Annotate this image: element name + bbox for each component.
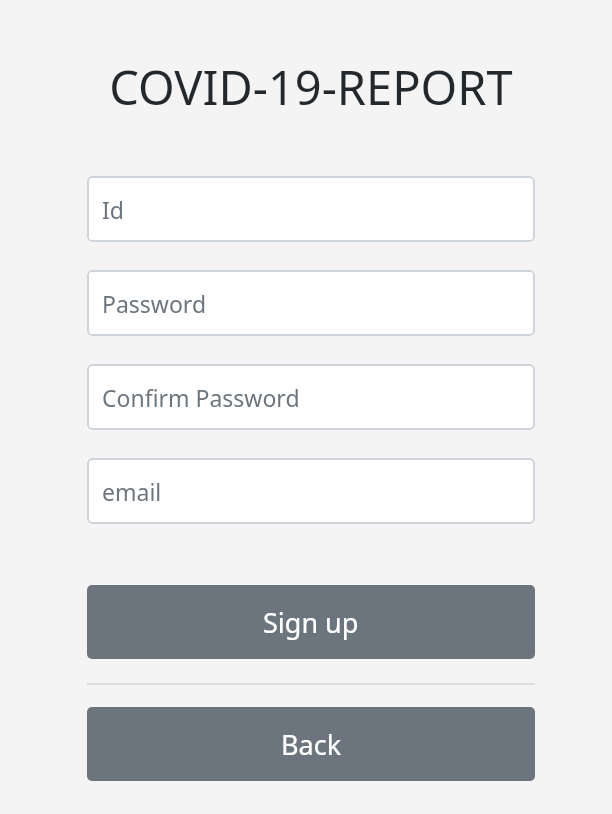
staticText: Id xyxy=(102,194,124,225)
button[interactable]: Password xyxy=(87,270,535,336)
staticText: Back xyxy=(281,726,342,763)
button[interactable]: email xyxy=(87,458,535,524)
button[interactable]: Confirm Password xyxy=(87,364,535,430)
staticText: email xyxy=(102,476,162,507)
staticText: COVID-19-REPORT xyxy=(87,55,535,119)
staticText: Confirm Password xyxy=(102,382,300,413)
button[interactable]: Sign up xyxy=(87,585,535,659)
staticText: Password xyxy=(102,288,207,319)
button[interactable]: Back xyxy=(87,707,535,781)
staticText: Sign up xyxy=(263,604,359,641)
button[interactable]: Id xyxy=(87,176,535,242)
